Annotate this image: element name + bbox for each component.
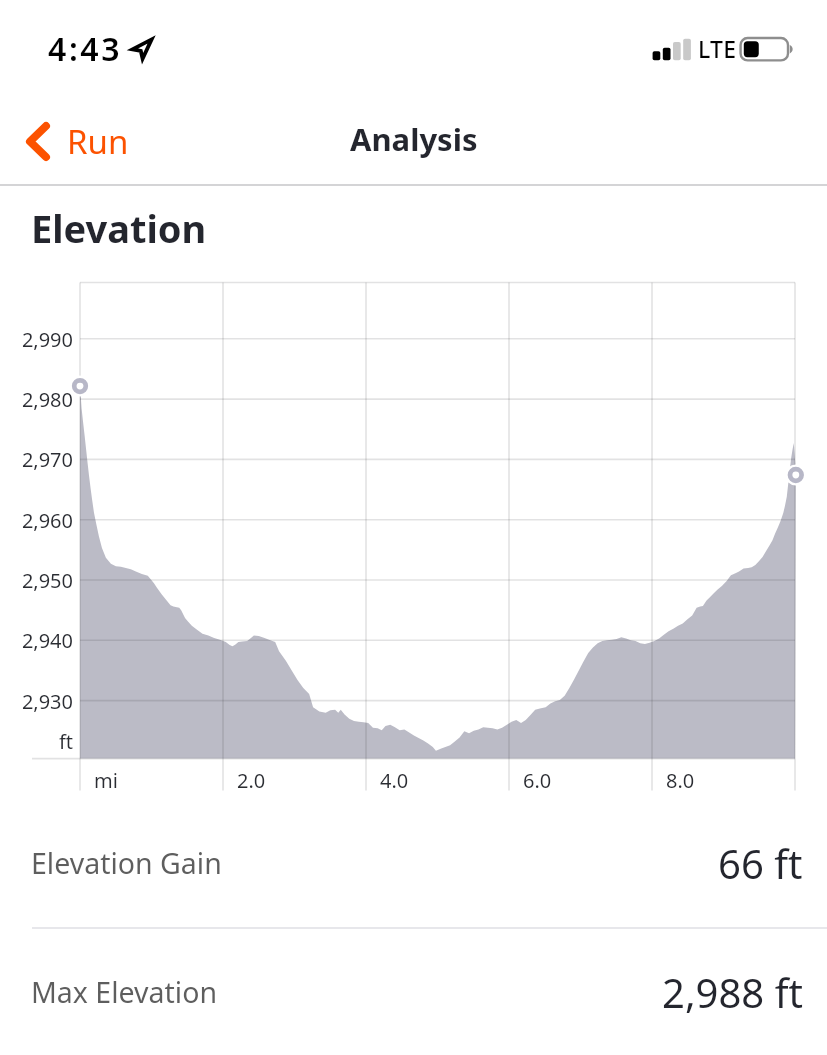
staticText: Elevation Gain [31, 844, 222, 883]
button[interactable]: Max Elevation [0, 936, 827, 1048]
staticText: 66 ft [718, 836, 803, 890]
staticText: LTE [698, 33, 737, 64]
staticText: 4.0 [380, 767, 409, 794]
staticText: 2,930 [2, 688, 73, 715]
staticText: Elevation [31, 202, 207, 254]
staticText: 6.0 [523, 767, 552, 794]
staticText: 2,970 [2, 446, 73, 473]
staticText: 2,940 [2, 627, 73, 654]
button[interactable]: Back [0, 113, 145, 170]
staticText: 2,988 ft [662, 965, 803, 1019]
staticText: 2,990 [2, 326, 73, 353]
staticText: 2,980 [2, 386, 73, 413]
staticText: Analysis [350, 118, 478, 160]
staticText: Max Elevation [31, 973, 217, 1012]
button[interactable]: Elevation profile chart [80, 283, 795, 759]
staticText: 2,950 [2, 567, 73, 594]
staticText: 2,960 [2, 507, 73, 534]
staticText: ft [2, 728, 73, 755]
button[interactable]: Elevation Gain [0, 807, 827, 919]
staticText: 2.0 [237, 767, 266, 794]
staticText: 4:43 [48, 27, 123, 71]
staticText: 8.0 [666, 767, 695, 794]
staticText: Run [67, 119, 129, 164]
staticText: mi [94, 767, 118, 794]
other: Back [26, 122, 50, 161]
